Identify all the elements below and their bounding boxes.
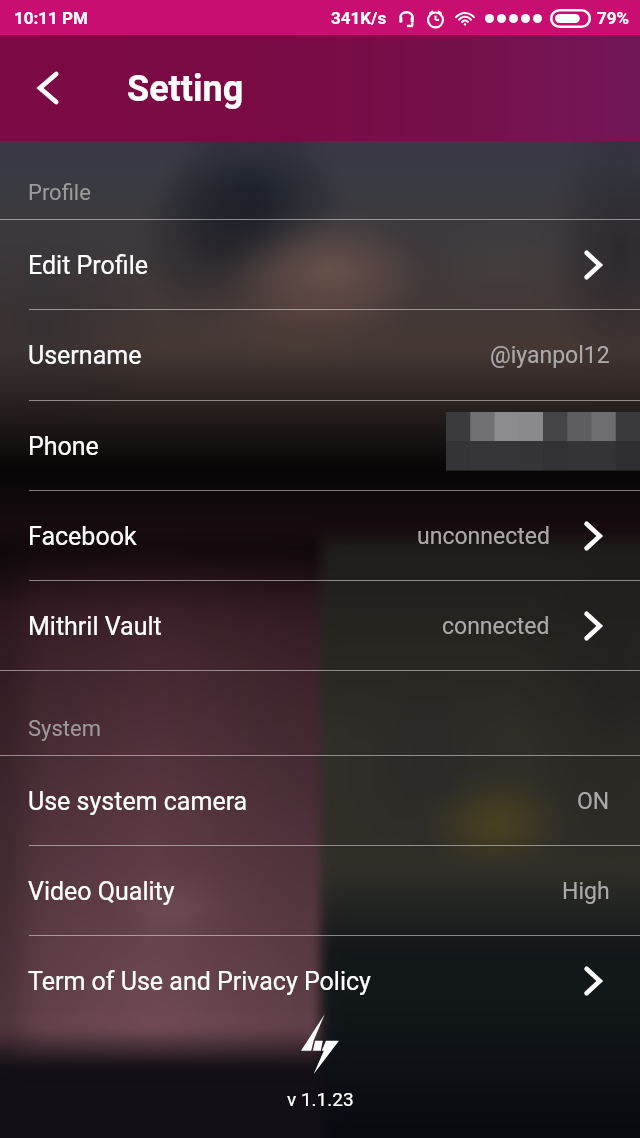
staticText: ON xyxy=(577,788,610,815)
staticText: connected xyxy=(442,613,550,640)
staticText: v 1.1.23 xyxy=(287,1088,354,1110)
button[interactable]: Phone xyxy=(0,401,640,491)
staticText: Mithril Vault xyxy=(28,612,162,641)
staticText: Facebook xyxy=(28,522,137,551)
button[interactable]: Mithril Vault xyxy=(0,581,640,671)
button[interactable]: Facebook xyxy=(0,491,640,581)
staticText: High xyxy=(562,878,610,905)
staticText: Use system camera xyxy=(28,787,248,816)
staticText: Setting xyxy=(127,68,244,110)
button[interactable]: Back xyxy=(18,57,80,119)
staticText: Username xyxy=(28,341,142,370)
staticText: Edit Profile xyxy=(28,251,148,280)
staticText: 10:11 PM xyxy=(14,8,88,28)
staticText: Phone xyxy=(28,432,99,461)
staticText: 341K/s xyxy=(331,8,387,28)
staticText: Term of Use and Privacy Policy xyxy=(28,967,371,996)
button[interactable]: Term of Use and Privacy Policy xyxy=(0,936,640,1026)
staticText: unconnected xyxy=(417,523,550,550)
button[interactable]: Use system camera xyxy=(0,756,640,846)
staticText: @iyanpol12 xyxy=(490,342,610,369)
staticText: 79% xyxy=(597,8,630,28)
staticText: Profile xyxy=(28,180,91,206)
button[interactable]: Username xyxy=(0,310,640,401)
staticText: System xyxy=(28,716,101,742)
staticText: Video Quality xyxy=(28,877,175,906)
button[interactable]: Video Quality xyxy=(0,846,640,936)
button[interactable]: Edit Profile xyxy=(0,220,640,310)
